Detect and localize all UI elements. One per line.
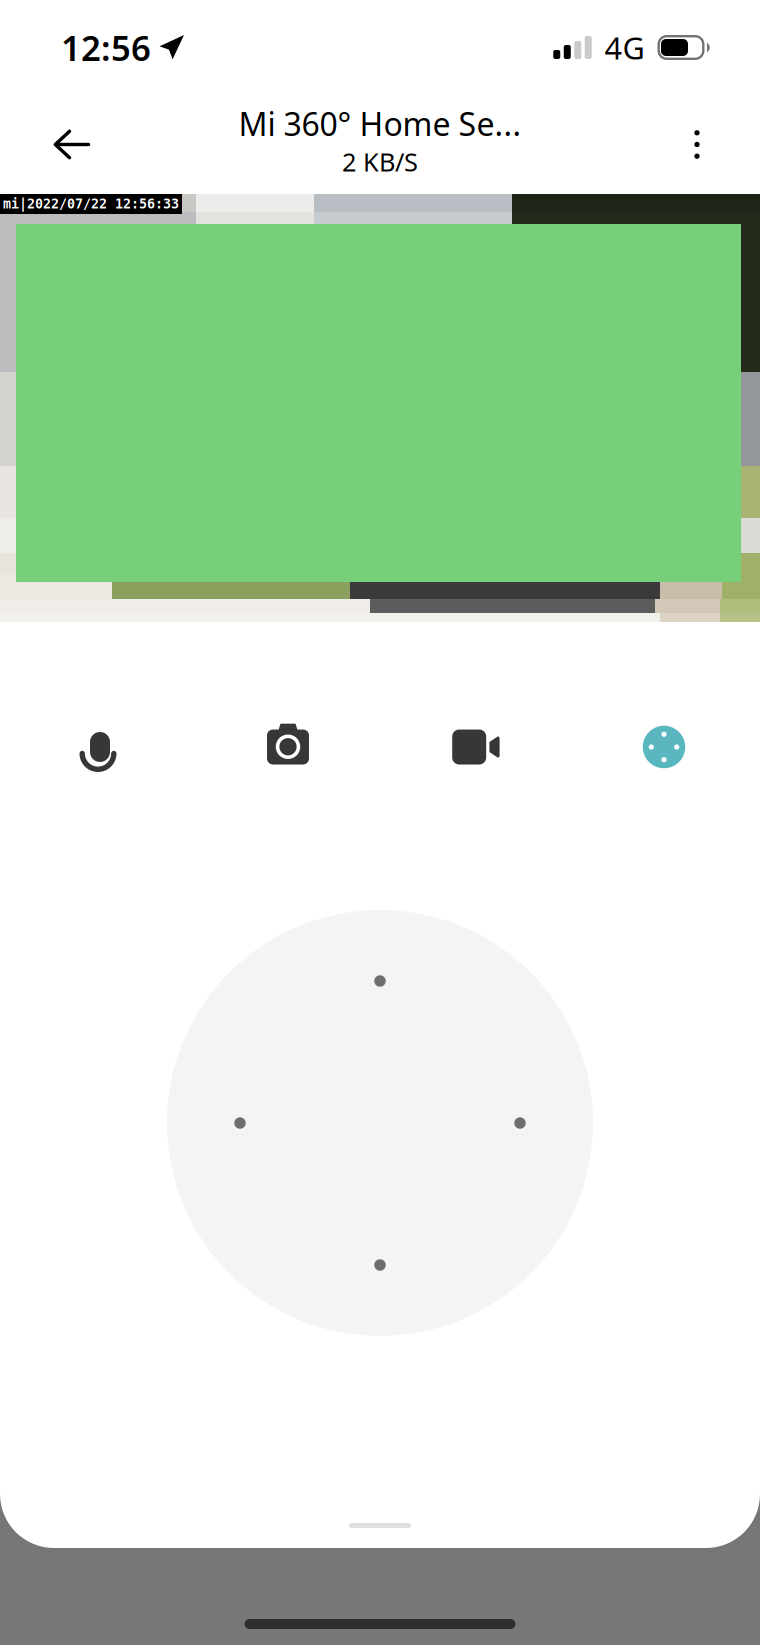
staticText: Mi 360° Home Se...: [238, 102, 521, 145]
button[interactable]: Back: [27, 99, 117, 189]
button[interactable]: Tilt up: [328, 929, 432, 1033]
button[interactable]: Pan right: [468, 1071, 572, 1175]
button[interactable]: Tilt down: [328, 1213, 432, 1317]
staticText: 12:56: [61, 24, 151, 70]
staticText: 2 KB/S: [342, 145, 418, 178]
staticText: mi|2022/07/22 12:56:33: [3, 196, 179, 211]
button[interactable]: Microphone: [6, 695, 194, 799]
button[interactable]: Snapshot: [194, 695, 382, 799]
button[interactable]: More options: [652, 99, 742, 189]
button[interactable]: Record video: [382, 695, 570, 799]
staticText: 4G: [604, 27, 644, 68]
button[interactable]: Pan and tilt control: [570, 695, 758, 799]
button[interactable]: Pan left: [188, 1071, 292, 1175]
